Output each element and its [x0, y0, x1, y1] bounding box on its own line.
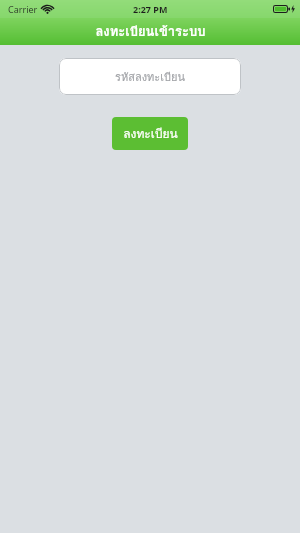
staticText: รหัสลงทะเบียน: [115, 68, 185, 85]
staticText: 2:27 PM: [133, 3, 168, 15]
button[interactable]: รหัสลงทะเบียน: [59, 58, 241, 95]
other: Wi-Fi signal: [42, 5, 53, 14]
staticText: ลงทะเบียนเข้าระบบ: [95, 21, 206, 42]
staticText: Carrier: [8, 3, 38, 15]
button[interactable]: ลงทะเบียน: [112, 117, 188, 150]
other: Battery charging: [273, 5, 290, 13]
staticText: ลงทะเบียน: [123, 124, 178, 143]
